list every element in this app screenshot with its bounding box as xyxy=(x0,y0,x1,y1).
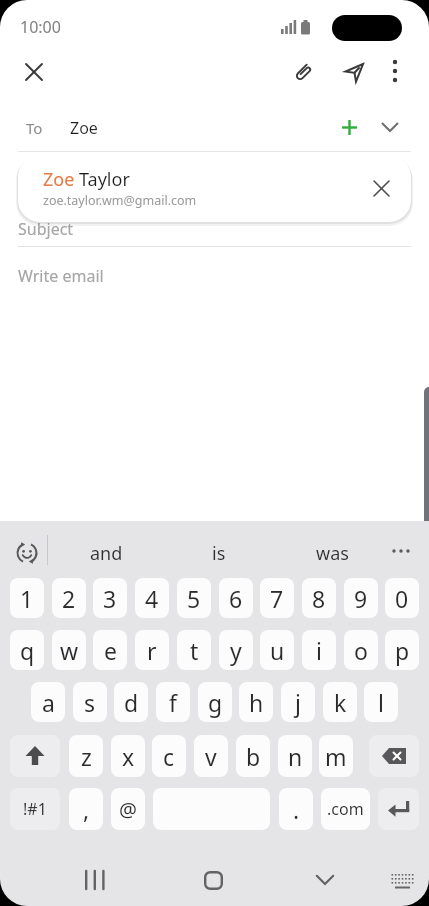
button[interactable] xyxy=(383,533,419,569)
staticText: .com xyxy=(327,798,364,820)
button[interactable]: j xyxy=(281,682,315,722)
button[interactable]: e xyxy=(93,630,127,670)
staticText: q xyxy=(20,635,35,666)
staticText: k xyxy=(334,687,347,718)
button[interactable]: v xyxy=(194,735,228,777)
button[interactable]: Zoe Taylor xyxy=(18,155,411,222)
button[interactable]: o xyxy=(344,630,378,670)
button[interactable]: f xyxy=(156,682,190,722)
button[interactable]: w xyxy=(52,630,86,670)
button[interactable]: .com xyxy=(321,788,370,830)
staticText: m xyxy=(325,741,347,772)
button[interactable]: @ xyxy=(111,788,145,830)
button[interactable]: . xyxy=(279,788,313,830)
button[interactable]: a xyxy=(31,682,65,722)
button[interactable]: !#1 xyxy=(10,788,60,830)
staticText: h xyxy=(249,687,264,718)
button[interactable] xyxy=(285,55,321,91)
staticText: p xyxy=(395,635,410,666)
staticText: 10:00 xyxy=(20,16,61,38)
staticText: and xyxy=(90,541,123,566)
button[interactable]: d xyxy=(114,682,148,722)
button[interactable] xyxy=(16,54,52,90)
button[interactable]: u xyxy=(260,630,294,670)
button[interactable]: t xyxy=(177,630,211,670)
button[interactable]: 5 xyxy=(177,578,211,618)
staticText: d xyxy=(124,687,139,718)
button[interactable] xyxy=(359,166,403,210)
button[interactable] xyxy=(378,788,419,830)
staticText: @ xyxy=(119,796,137,823)
staticText: 2 xyxy=(62,583,76,614)
button[interactable]: i xyxy=(302,630,336,670)
button[interactable]: c xyxy=(152,735,186,777)
staticText: z xyxy=(81,741,92,772)
staticText: 3 xyxy=(103,583,117,614)
staticText: l xyxy=(378,687,384,718)
staticText: 4 xyxy=(145,583,159,614)
button[interactable]: n xyxy=(278,735,312,777)
button[interactable]: p xyxy=(385,630,419,670)
button[interactable]: 0 xyxy=(385,578,419,618)
staticText: !#1 xyxy=(23,798,47,820)
button[interactable]: y xyxy=(219,630,253,670)
button[interactable]: h xyxy=(239,682,273,722)
staticText: 1 xyxy=(20,583,34,614)
staticText: To xyxy=(26,118,43,138)
button[interactable]: 6 xyxy=(219,578,253,618)
button[interactable] xyxy=(369,735,419,777)
staticText: e xyxy=(104,635,117,666)
staticText: . xyxy=(293,794,300,825)
button[interactable] xyxy=(333,111,365,143)
button[interactable] xyxy=(384,863,420,899)
button[interactable]: m xyxy=(319,735,353,777)
staticText: is xyxy=(212,541,226,566)
button[interactable]: 3 xyxy=(93,578,127,618)
button[interactable]: and xyxy=(58,534,154,572)
button[interactable] xyxy=(194,861,232,899)
button[interactable]: 9 xyxy=(344,578,378,618)
staticText: Zoe xyxy=(70,117,98,139)
button[interactable]: x xyxy=(111,735,145,777)
button[interactable]: is xyxy=(171,534,267,572)
staticText: f xyxy=(169,687,177,718)
staticText: y xyxy=(230,635,242,666)
button[interactable]: , xyxy=(69,788,103,830)
staticText: v xyxy=(205,741,217,772)
button[interactable]: 7 xyxy=(260,578,294,618)
button[interactable]: k xyxy=(323,682,357,722)
button[interactable]: 1 xyxy=(10,578,44,618)
button[interactable]: was xyxy=(284,534,380,572)
staticText: 6 xyxy=(229,583,243,614)
button[interactable]: g xyxy=(198,682,232,722)
button[interactable]: s xyxy=(73,682,107,722)
staticText: t xyxy=(190,635,199,666)
staticText: Zoe Taylor xyxy=(43,167,130,192)
button[interactable] xyxy=(306,861,344,899)
button[interactable]: b xyxy=(236,735,270,777)
staticText: 7 xyxy=(270,583,284,614)
button[interactable]: r xyxy=(135,630,169,670)
button[interactable] xyxy=(336,55,372,91)
staticText: Subject xyxy=(18,218,74,240)
staticText: s xyxy=(84,687,96,718)
button[interactable] xyxy=(379,55,411,87)
button[interactable]: 4 xyxy=(135,578,169,618)
staticText: 8 xyxy=(312,583,326,614)
button[interactable] xyxy=(76,861,114,899)
button[interactable] xyxy=(8,534,46,572)
staticText: n xyxy=(288,741,303,772)
button[interactable]: l xyxy=(364,682,398,722)
button[interactable] xyxy=(374,111,406,143)
button[interactable]: q xyxy=(10,630,44,670)
staticText: zoe.taylor.wm@gmail.com xyxy=(43,192,197,209)
staticText: c xyxy=(163,741,175,772)
button[interactable]: 8 xyxy=(302,578,336,618)
button[interactable]: z xyxy=(69,735,103,777)
button[interactable] xyxy=(10,735,60,777)
staticText: r xyxy=(147,635,157,666)
staticText: x xyxy=(122,741,135,772)
button[interactable]: 2 xyxy=(52,578,86,618)
staticText: a xyxy=(42,687,55,718)
